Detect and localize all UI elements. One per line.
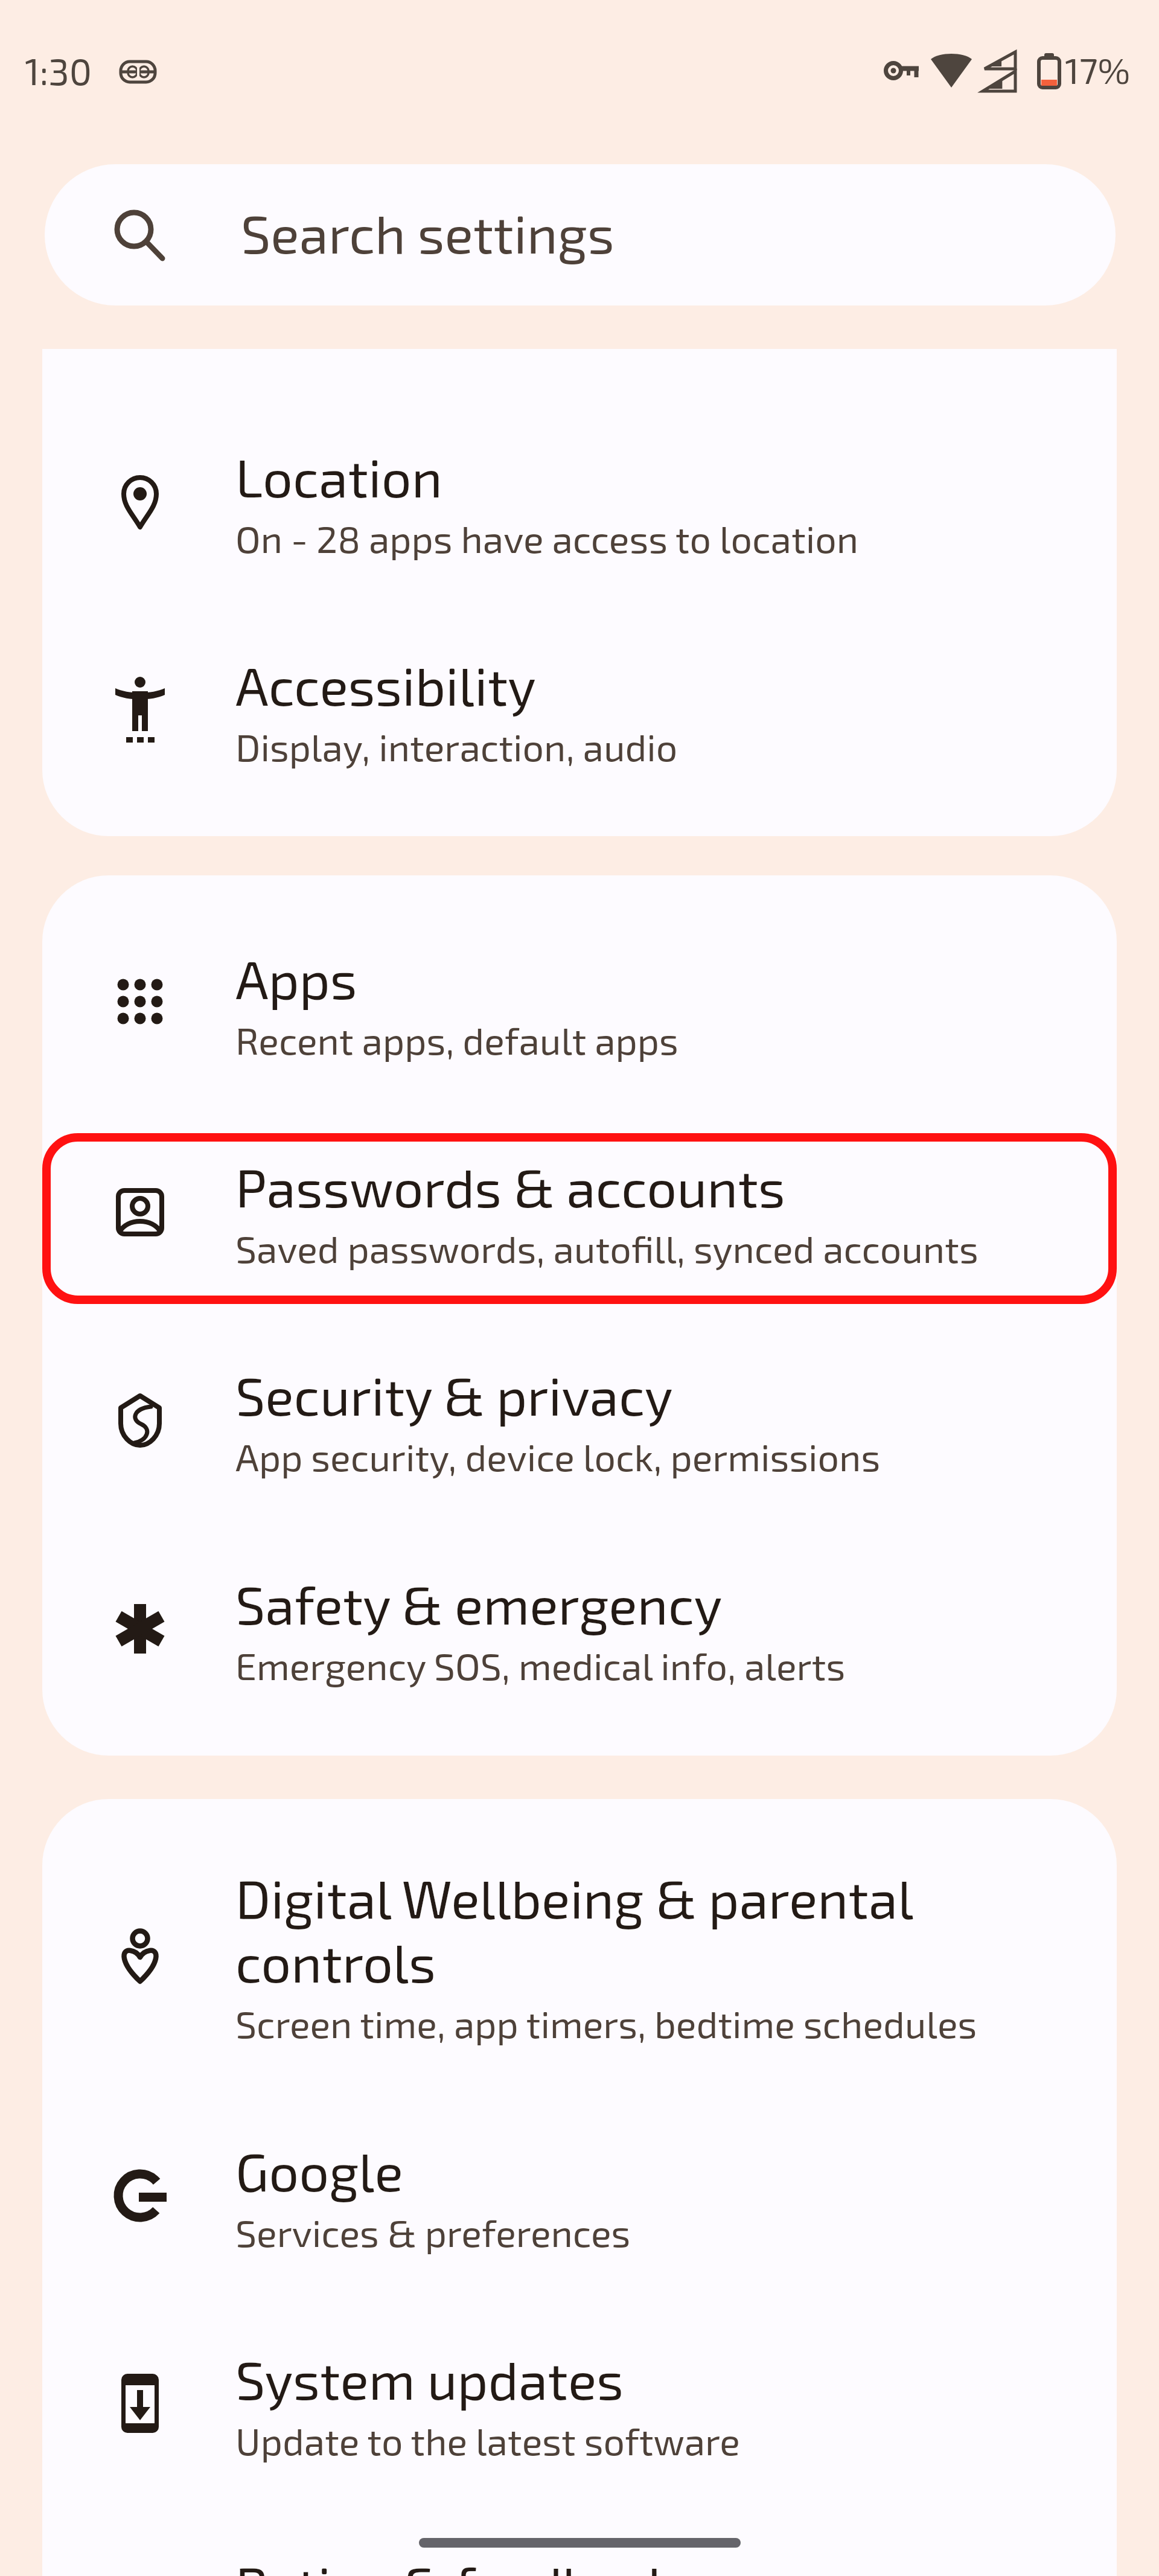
staticText: Safety & emergency — [235, 1571, 1111, 1635]
button[interactable]: Security & privacy — [42, 1315, 1117, 1524]
staticText: 1:30 — [25, 48, 92, 92]
staticText: Google — [235, 2138, 1111, 2202]
staticText: Apps — [235, 946, 1111, 1010]
staticText: Rating & feedback — [235, 2552, 1111, 2576]
staticText: On - 28 apps have access to location — [235, 516, 858, 561]
button[interactable]: Rating & feedback — [42, 2505, 1117, 2576]
staticText: Accessibility — [235, 653, 1111, 717]
button[interactable]: System updates — [42, 2300, 1117, 2508]
staticText: Search settings — [241, 200, 615, 264]
button[interactable]: Apps — [42, 899, 1117, 1107]
other: Home — [419, 2538, 741, 2548]
staticText: Passwords & accounts — [235, 1154, 1111, 1218]
staticText: Location — [235, 444, 1111, 508]
staticText: Recent apps, default apps — [235, 1017, 678, 1063]
button[interactable]: Passwords & accounts — [42, 1107, 1117, 1315]
button[interactable]: Search — [45, 164, 1116, 305]
staticText: 17% — [1065, 48, 1131, 91]
staticText: Update to the latest software — [235, 2418, 740, 2463]
staticText: Digital Wellbeing & parental controls — [235, 1865, 954, 1993]
staticText: Saved passwords, autofill, synced accoun… — [235, 1226, 979, 1271]
button[interactable]: Safety & emergency — [42, 1524, 1117, 1733]
staticText: System updates — [235, 2347, 1111, 2411]
other: Search — [45, 164, 1116, 305]
button[interactable]: Digital Wellbeing & parental controls — [42, 1818, 1117, 2091]
staticText: App security, device lock, permissions — [235, 1434, 881, 1479]
button[interactable]: Accessibility — [42, 606, 1117, 814]
button[interactable]: Location — [42, 397, 1117, 606]
staticText: Services & preferences — [235, 2210, 631, 2255]
staticText: Emergency SOS, medical info, alerts — [235, 1643, 846, 1688]
staticText: Display, interaction, audio — [235, 724, 678, 769]
button[interactable]: Google — [42, 2091, 1117, 2300]
staticText: Screen time, app timers, bedtime schedul… — [235, 2001, 977, 2046]
staticText: Security & privacy — [235, 1363, 1111, 1427]
